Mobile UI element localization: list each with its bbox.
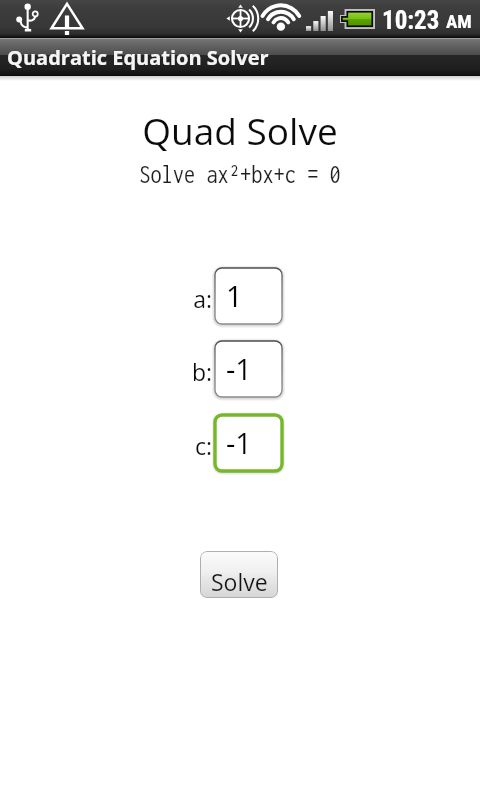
other: USB connected [16, 4, 38, 32]
staticText: Quadratic Equation Solver [7, 44, 269, 71]
other: Battery [340, 9, 375, 29]
staticText: Quad Solve [0, 105, 480, 155]
button[interactable]: -1 [212, 412, 285, 474]
staticText: a: [164, 283, 212, 314]
staticText: -1 [226, 349, 252, 388]
staticText: -1 [226, 423, 252, 462]
staticText: 1 [226, 276, 243, 315]
other: GPS active [226, 4, 259, 33]
staticText: c: [164, 430, 212, 461]
button[interactable]: 1 [212, 265, 285, 327]
staticText: Solve ax²+bx+c = 0 [0, 159, 480, 188]
staticText: b: [164, 356, 212, 387]
other: Mobile signal [306, 11, 333, 31]
other: Warning [51, 3, 83, 35]
button[interactable]: Solve [200, 551, 278, 598]
staticText: AM [446, 10, 472, 32]
staticText: 10:23 [382, 6, 440, 35]
staticText: Solve [211, 566, 268, 597]
button[interactable]: -1 [212, 338, 285, 400]
other: Wi-Fi [266, 6, 297, 30]
